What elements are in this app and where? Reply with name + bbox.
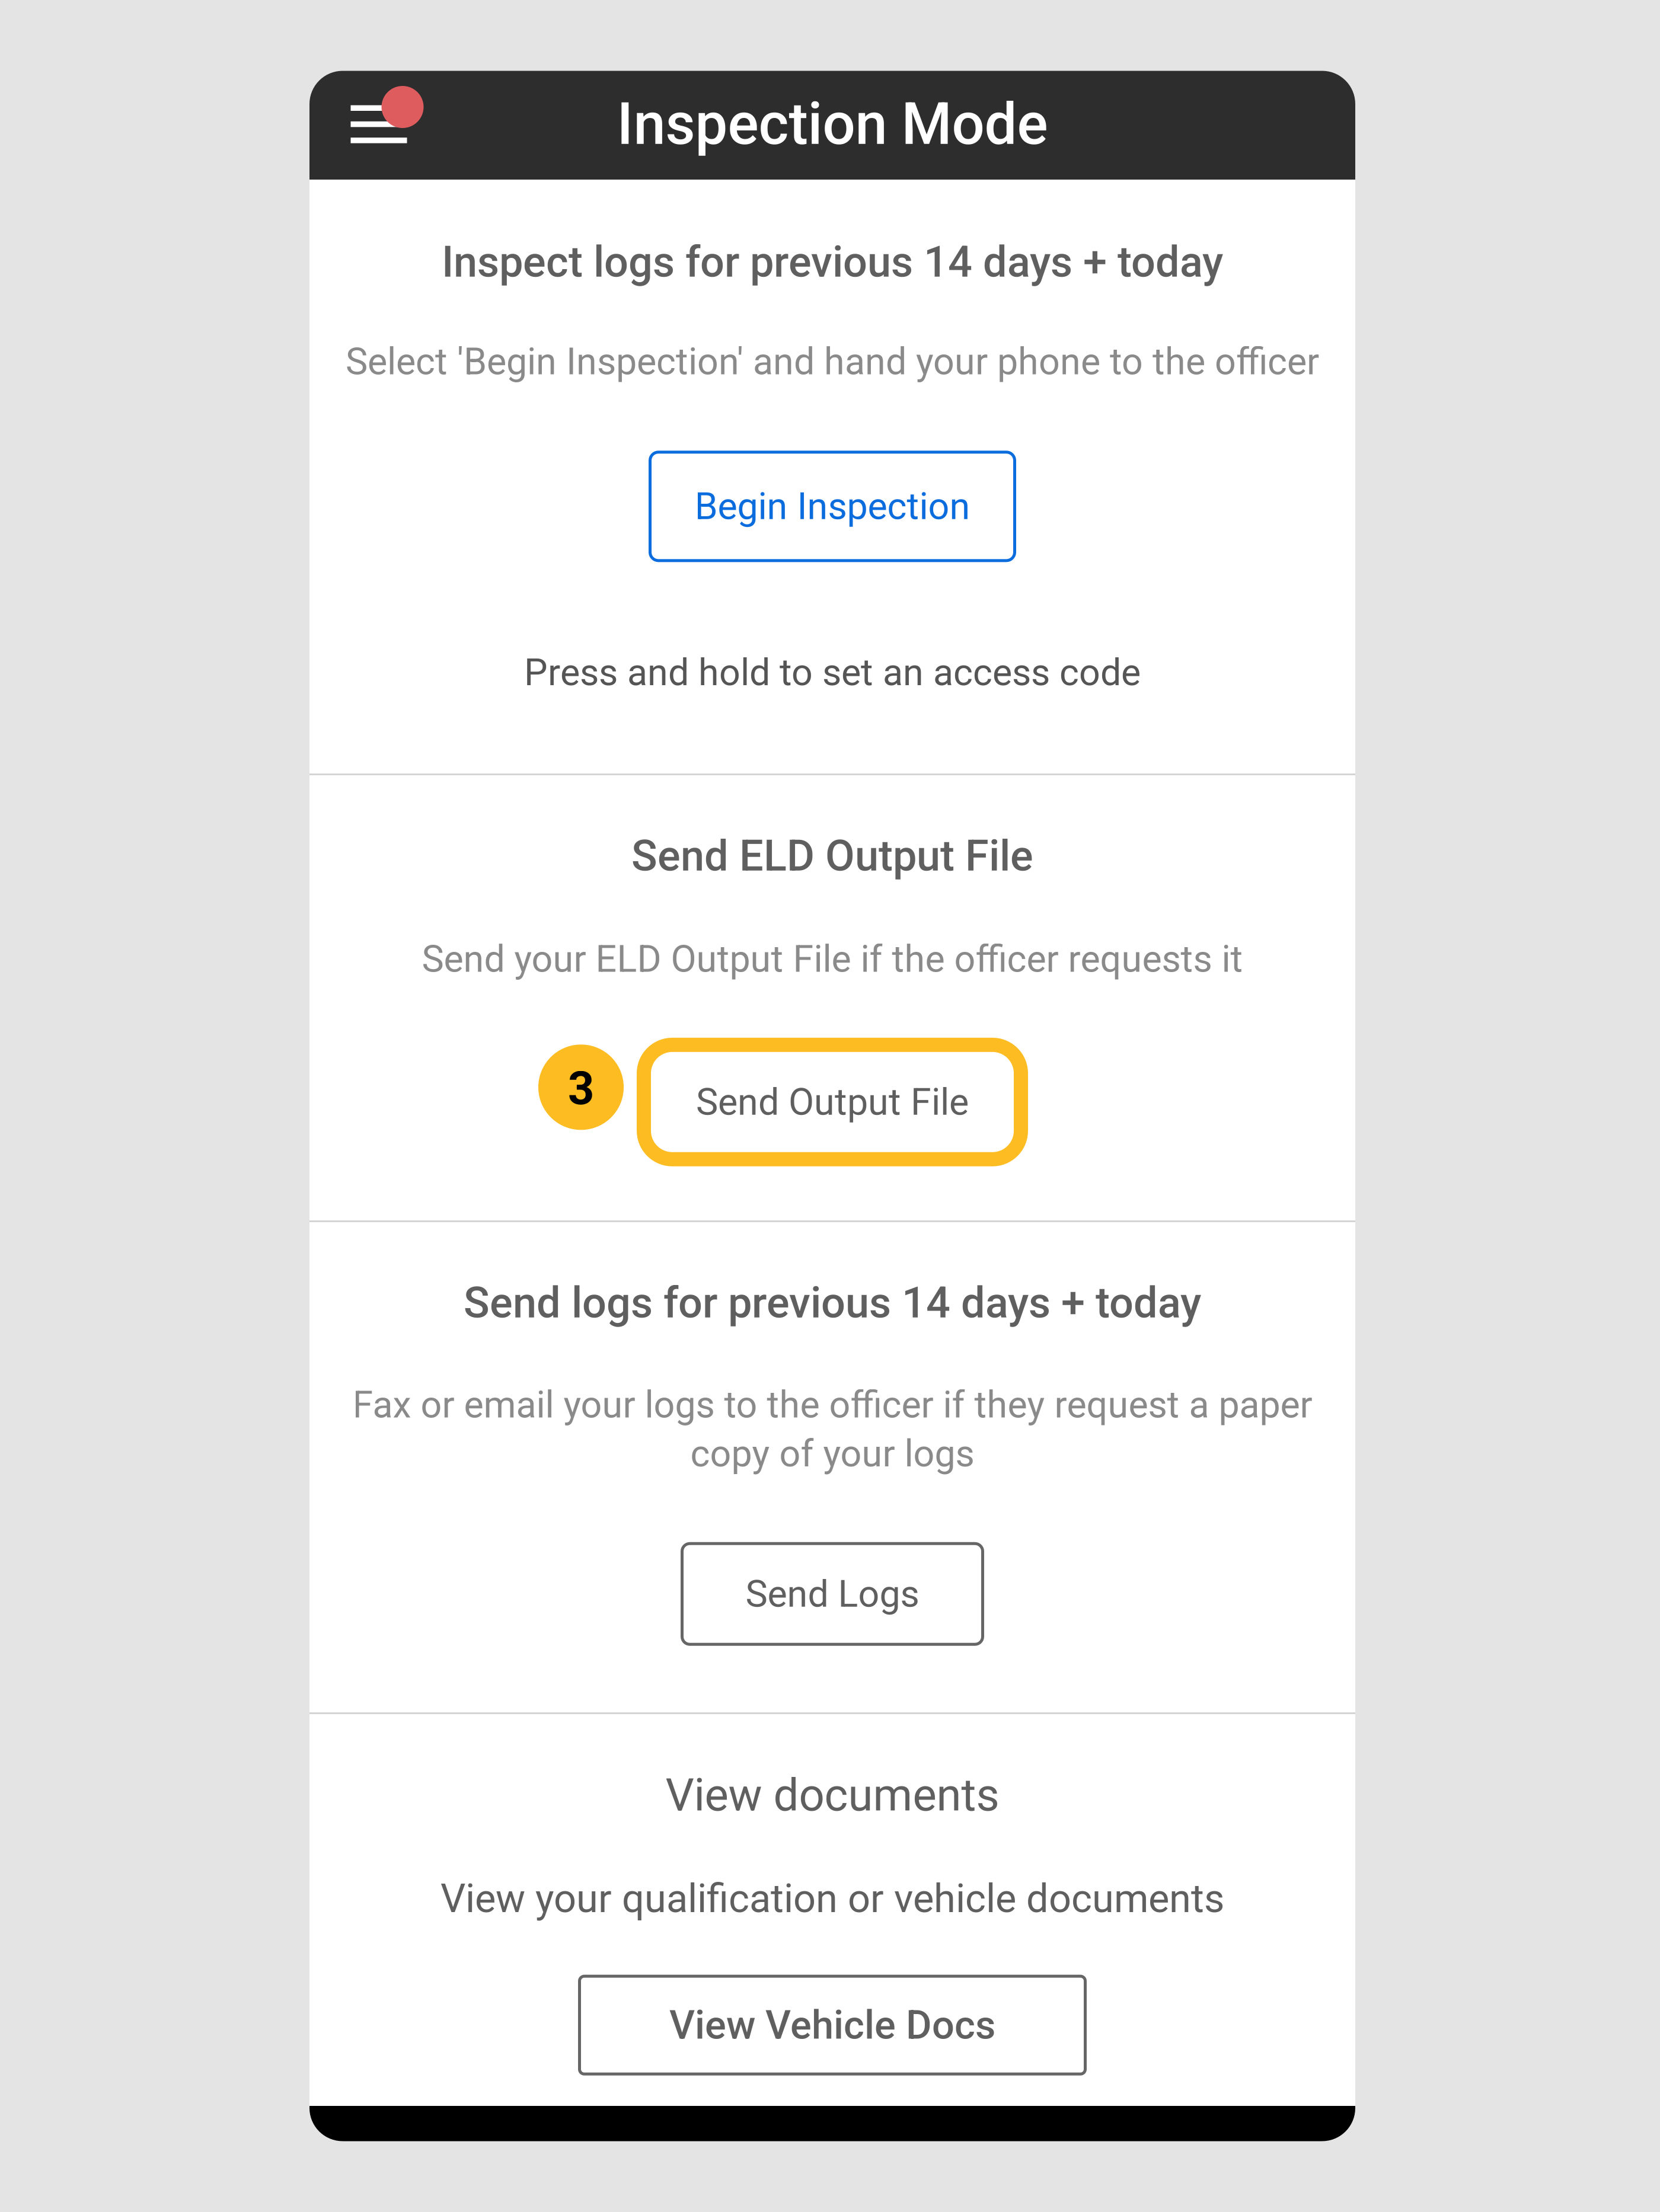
staticText: Send your ELD Output File if the officer… [422, 937, 1243, 981]
button[interactable]: Send Logs [682, 1544, 983, 1644]
staticText: 3 [568, 1062, 594, 1115]
staticText: Begin Inspection [695, 485, 970, 528]
button[interactable]: Menu [334, 80, 423, 169]
staticText: copy of your logs [690, 1432, 974, 1475]
button[interactable]: View Vehicle Docs [580, 1976, 1085, 2074]
staticText: Send logs for previous 14 days + today [464, 1278, 1201, 1328]
staticText: Fax or email your logs to the officer if… [352, 1383, 1312, 1427]
staticText: Inspection Mode [617, 90, 1048, 158]
button[interactable]: Begin Inspection [650, 452, 1015, 561]
staticText: Select 'Begin Inspection' and hand your … [346, 340, 1319, 383]
staticText: Send Logs [746, 1572, 919, 1616]
staticText: Send ELD Output File [631, 831, 1033, 881]
staticText: Inspect logs for previous 14 days + toda… [442, 237, 1223, 287]
staticText: View documents [665, 1769, 999, 1821]
staticText: Press and hold to set an access code [524, 651, 1141, 694]
staticText: Send Output File [696, 1080, 969, 1124]
button[interactable]: Send Output File [646, 1046, 1019, 1158]
staticText: View Vehicle Docs [669, 2002, 995, 2048]
staticText: View your qualification or vehicle docum… [440, 1875, 1224, 1922]
